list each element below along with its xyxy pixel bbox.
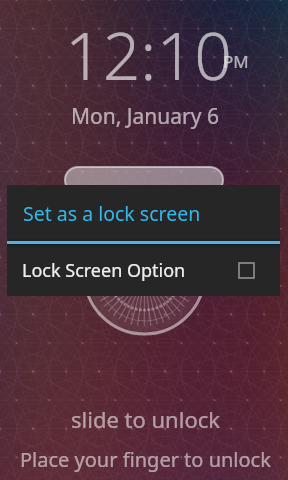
staticText: PM <box>223 50 249 73</box>
staticText: slide to unlock <box>71 404 221 434</box>
staticText: Lock Screen Option <box>22 258 186 283</box>
button[interactable]: Set as a lock screen <box>7 185 280 240</box>
staticText: Mon, January 6 <box>71 102 219 131</box>
button[interactable]: Lock Screen Option <box>7 244 280 296</box>
staticText: 12:10 <box>65 9 232 99</box>
staticText: Place your finger to unlock <box>20 446 271 473</box>
button[interactable]: Lock Screen Option checkbox <box>239 263 254 278</box>
staticText: Set as a lock screen <box>23 200 201 227</box>
